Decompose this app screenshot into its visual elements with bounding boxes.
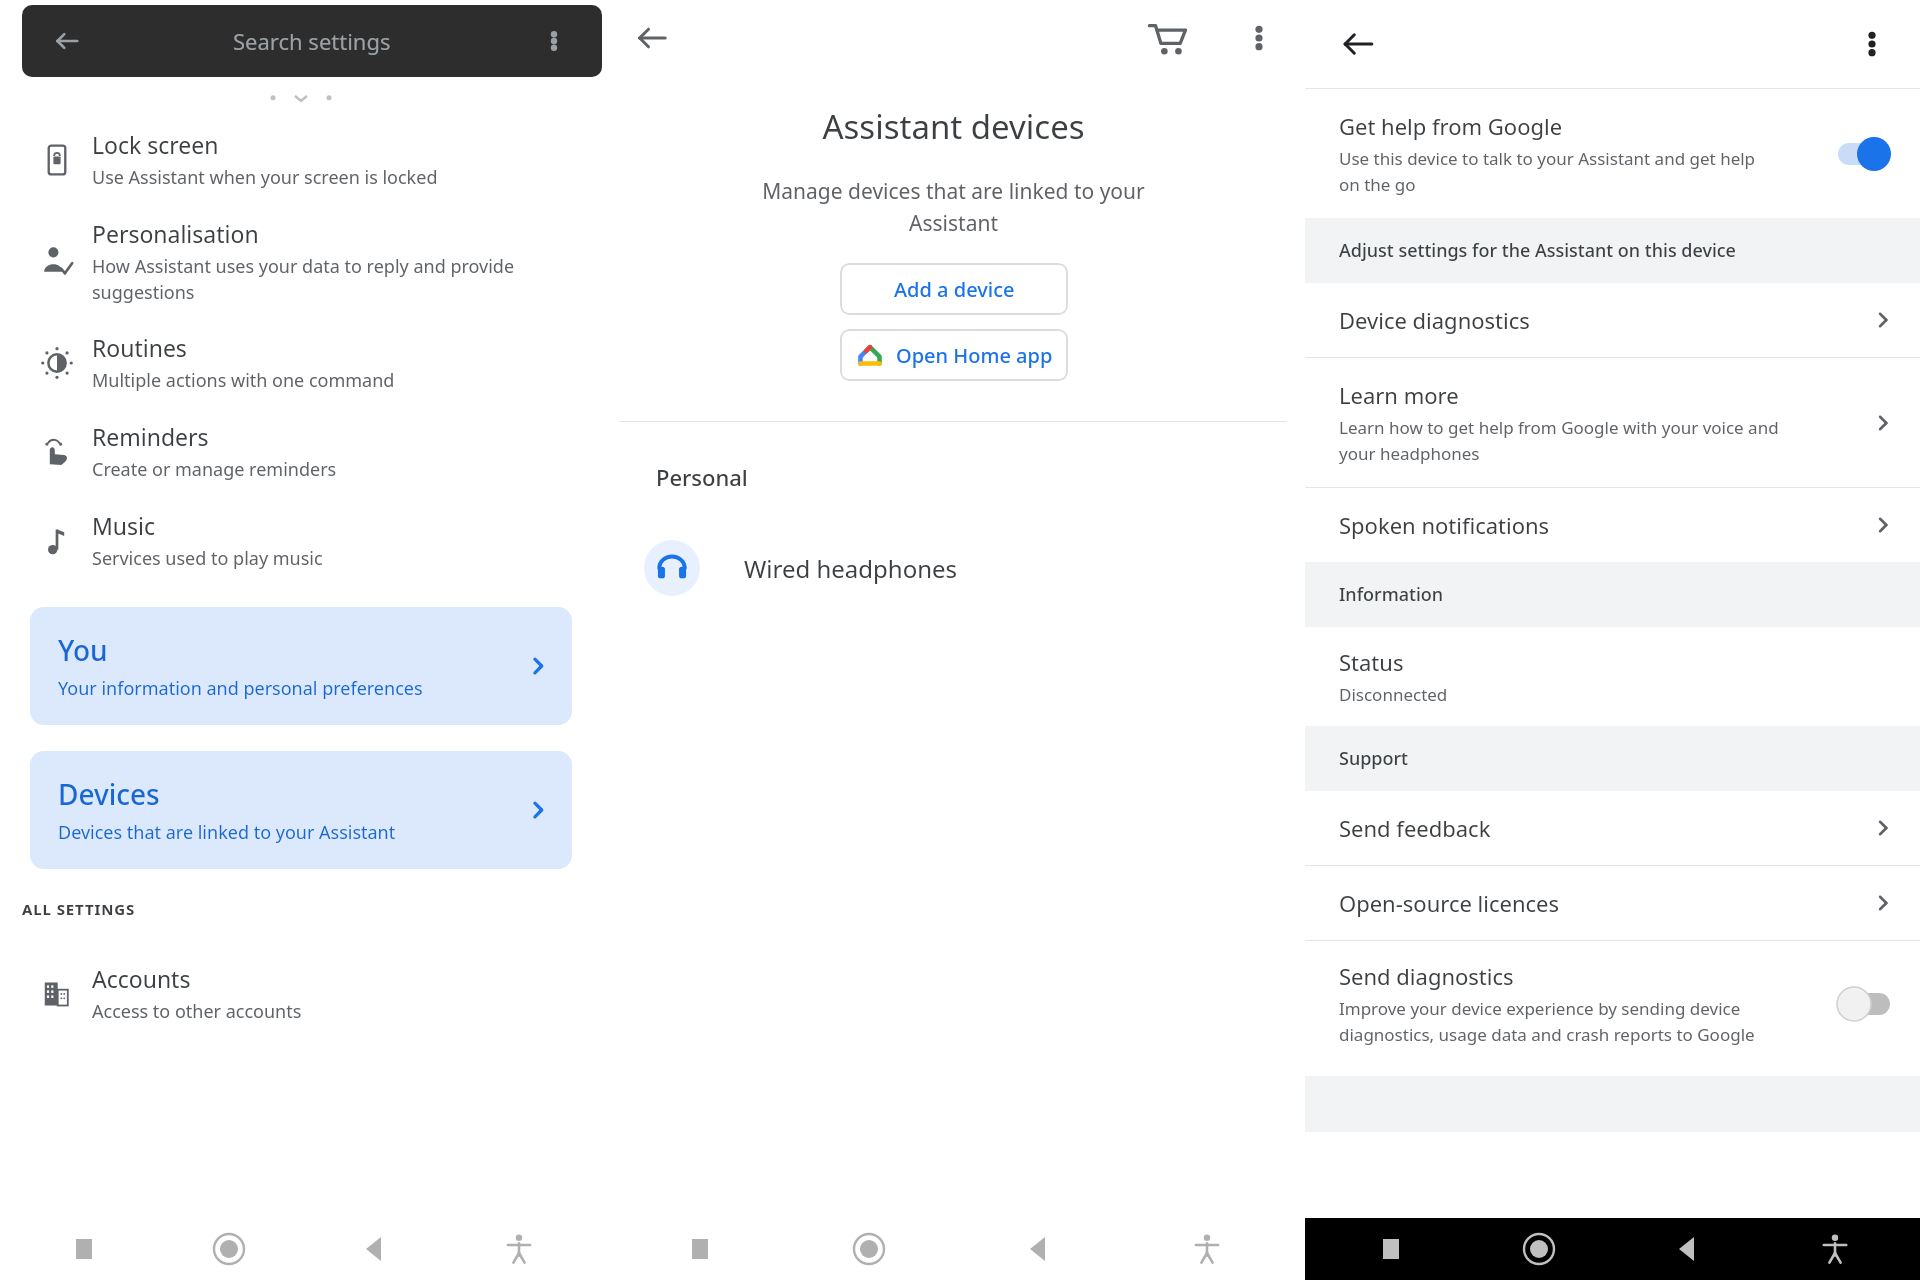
staticText: Services used to play music	[92, 546, 323, 571]
button[interactable]: Open Home app	[840, 329, 1068, 381]
staticText: Adjust settings for the Assistant on thi…	[1339, 238, 1736, 263]
button[interactable]: Accessibility	[1815, 1229, 1855, 1269]
button[interactable]: You	[30, 607, 572, 725]
staticText: Information	[1339, 582, 1444, 607]
button[interactable]: Back	[1667, 1229, 1707, 1269]
staticText: Device diagnostics	[1339, 305, 1530, 335]
button[interactable]: Back	[630, 16, 674, 60]
button[interactable]: More options	[1241, 20, 1277, 56]
button[interactable]: Shop	[1145, 16, 1189, 60]
staticText: Lock screen	[92, 129, 219, 160]
button[interactable]: Back	[1018, 1229, 1058, 1269]
staticText: Spoken notifications	[1339, 510, 1550, 540]
button[interactable]: Reminders	[0, 407, 602, 496]
button[interactable]: Devices	[30, 751, 572, 869]
staticText: Add a device	[894, 276, 1015, 303]
staticText: Search settings	[233, 26, 391, 56]
staticText: Open-source licences	[1339, 888, 1560, 918]
staticText: How Assistant uses your data to reply an…	[92, 254, 515, 304]
staticText: Open Home app	[896, 342, 1053, 369]
button[interactable]: Recents	[680, 1229, 720, 1269]
other: Back	[50, 24, 84, 58]
button[interactable]: Back	[354, 1229, 394, 1269]
staticText: Personal	[656, 462, 748, 492]
button[interactable]: Device diagnostics	[1305, 283, 1920, 357]
button[interactable]: Wired headphones	[602, 530, 1305, 606]
button[interactable]: Routines	[0, 318, 602, 407]
button[interactable]: Get help from Google	[1305, 89, 1920, 218]
staticText: Your information and personal preference…	[58, 676, 423, 701]
button[interactable]: Lock screen	[0, 115, 602, 204]
button[interactable]: Accessibility	[1187, 1229, 1227, 1269]
button[interactable]: Accounts	[0, 949, 602, 1038]
staticText: Get help from Google	[1339, 111, 1563, 141]
button[interactable]: Add a device	[840, 263, 1068, 315]
button[interactable]: Learn more	[1305, 358, 1920, 487]
staticText: Access to other accounts	[92, 999, 302, 1024]
button[interactable]: Open-source licences	[1305, 866, 1920, 940]
staticText: Devices	[58, 775, 160, 813]
button[interactable]: Music	[0, 496, 602, 585]
button[interactable]: Back	[1335, 21, 1381, 67]
staticText: ALL SETTINGS	[22, 899, 136, 919]
button[interactable]: Send diagnostics	[1305, 941, 1920, 1066]
staticText: Multiple actions with one command	[92, 368, 395, 393]
button[interactable]: Recents	[64, 1229, 104, 1269]
button[interactable]: Status	[1305, 627, 1920, 726]
staticText: Personalisation	[92, 218, 259, 249]
staticText: Status	[1339, 647, 1404, 677]
staticText: Use Assistant when your screen is locked	[92, 165, 438, 190]
staticText: Manage devices that are linked to your A…	[602, 177, 1305, 237]
button[interactable]: More options	[1854, 26, 1890, 62]
staticText: Send feedback	[1339, 813, 1491, 843]
button[interactable]: Send feedback	[1305, 791, 1920, 865]
staticText: Devices that are linked to your Assistan…	[58, 820, 396, 845]
staticText: Improve your device experience by sendin…	[1339, 997, 1755, 1046]
staticText: Create or manage reminders	[92, 457, 337, 482]
button[interactable]: Spoken notifications	[1305, 488, 1920, 562]
staticText: Accounts	[92, 963, 191, 994]
staticText: Learn more	[1339, 380, 1459, 410]
other: More options	[540, 27, 568, 55]
staticText: Send diagnostics	[1339, 961, 1514, 991]
button[interactable]: Recents	[1371, 1229, 1411, 1269]
staticText: Wired headphones	[744, 552, 958, 585]
button[interactable]	[1832, 984, 1896, 1024]
staticText: Routines	[92, 332, 187, 363]
staticText: Learn how to get help from Google with y…	[1339, 416, 1779, 465]
button[interactable]: Personalisation	[0, 204, 602, 318]
button[interactable]: Home	[209, 1229, 249, 1269]
button[interactable]: Back	[22, 5, 602, 77]
button[interactable]: Home	[849, 1229, 889, 1269]
staticText: Use this device to talk to your Assistan…	[1339, 147, 1756, 196]
staticText: Music	[92, 510, 156, 541]
button[interactable]: Accessibility	[499, 1229, 539, 1269]
staticText: Assistant devices	[602, 104, 1305, 149]
staticText: You	[58, 631, 108, 669]
button[interactable]	[1832, 134, 1896, 174]
button[interactable]: Home	[1519, 1229, 1559, 1269]
staticText: Support	[1339, 746, 1409, 771]
staticText: Disconnected	[1339, 683, 1448, 706]
staticText: Reminders	[92, 421, 209, 452]
